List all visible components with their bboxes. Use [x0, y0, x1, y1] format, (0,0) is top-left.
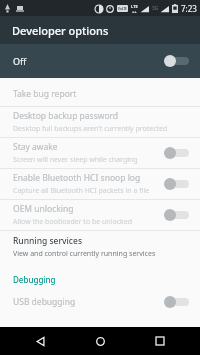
staticText: Allow the bootloader to be unlocked	[13, 217, 133, 227]
button[interactable]: Recent apps	[140, 327, 180, 355]
button[interactable]: Home	[80, 327, 120, 355]
button[interactable]: Enable Bluetooth HCI snoop log	[0, 169, 200, 199]
button[interactable]: Desktop backup password	[0, 107, 200, 137]
staticText: Off	[13, 55, 162, 67]
button[interactable]: Back	[20, 327, 60, 355]
staticText: Capture all Bluetooth HCI packets in a f…	[13, 186, 150, 196]
button[interactable]: OEM unlocking	[0, 200, 200, 230]
button[interactable]: Stay awake	[0, 138, 200, 168]
staticText: USB debugging	[13, 296, 76, 308]
staticText: Desktop backup password	[13, 110, 119, 122]
button[interactable]: Off	[0, 44, 200, 78]
staticText: 3G	[152, 5, 159, 12]
staticText: Take bug report	[13, 88, 77, 100]
staticText: Running services	[13, 235, 83, 247]
button[interactable]: USB debugging	[0, 290, 200, 314]
staticText: Stay awake	[13, 141, 58, 153]
staticText: LTE	[131, 4, 138, 9]
staticText: Screen will never sleep while charging	[13, 155, 138, 165]
staticText: Developer options	[12, 23, 109, 38]
staticText: Desktop full backups aren't currently pr…	[13, 124, 168, 134]
button[interactable]: Take bug report	[0, 82, 200, 106]
staticText: 7:23	[181, 3, 197, 14]
staticText: Enable Bluetooth HCI snoop log	[13, 172, 141, 184]
staticText: View and control currently running servi…	[13, 249, 156, 259]
staticText: OEM unlocking	[13, 203, 74, 215]
staticText: Debugging	[13, 274, 56, 285]
staticText: ++	[132, 9, 137, 14]
button[interactable]: Running services	[0, 231, 200, 263]
staticText: VoLTE	[118, 7, 127, 11]
